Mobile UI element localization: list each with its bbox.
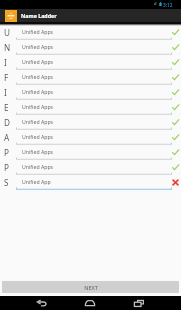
button[interactable]: E xyxy=(0,100,181,115)
staticText: E xyxy=(4,102,9,113)
button[interactable]: S xyxy=(0,175,181,190)
button[interactable]: I xyxy=(0,85,181,100)
button[interactable]: A xyxy=(0,130,181,145)
staticText: Name Ladder xyxy=(21,12,57,19)
staticText: A xyxy=(4,132,10,143)
staticText: Unified App xyxy=(22,178,51,185)
button[interactable]: F xyxy=(0,70,181,85)
staticText: Unified Apps xyxy=(22,148,54,155)
staticText: 3:12 xyxy=(163,2,173,9)
button[interactable]: Back xyxy=(24,296,60,310)
staticText: I xyxy=(4,87,7,98)
staticText: F xyxy=(4,72,9,83)
button[interactable]: D xyxy=(0,115,181,130)
staticText: Unified Apps xyxy=(22,118,54,125)
staticText: Unified Apps xyxy=(22,133,54,140)
staticText: S xyxy=(4,177,9,188)
staticText: Unified Apps xyxy=(22,43,54,50)
button[interactable]: P xyxy=(0,160,181,175)
button[interactable]: P xyxy=(0,145,181,160)
staticText: NEXT xyxy=(84,284,98,291)
staticText: Unified Apps xyxy=(22,103,54,110)
staticText: U xyxy=(4,27,10,38)
staticText: Unified Apps xyxy=(22,88,54,95)
staticText: Unified Apps xyxy=(22,58,54,65)
button[interactable]: Home xyxy=(72,296,108,310)
button[interactable]: I xyxy=(0,55,181,70)
staticText: Unified Apps xyxy=(22,163,54,170)
staticText: Unified Apps xyxy=(22,73,54,80)
staticText: Unified Apps xyxy=(22,28,54,35)
staticText: P xyxy=(4,162,9,173)
staticText: N xyxy=(4,42,11,53)
button[interactable]: U xyxy=(0,25,181,40)
button[interactable]: N xyxy=(0,40,181,55)
staticText: D xyxy=(4,117,10,128)
button[interactable]: Recents xyxy=(121,296,157,310)
staticText: I xyxy=(4,57,7,68)
staticText: P xyxy=(4,147,9,158)
button[interactable]: NEXT xyxy=(2,281,179,293)
